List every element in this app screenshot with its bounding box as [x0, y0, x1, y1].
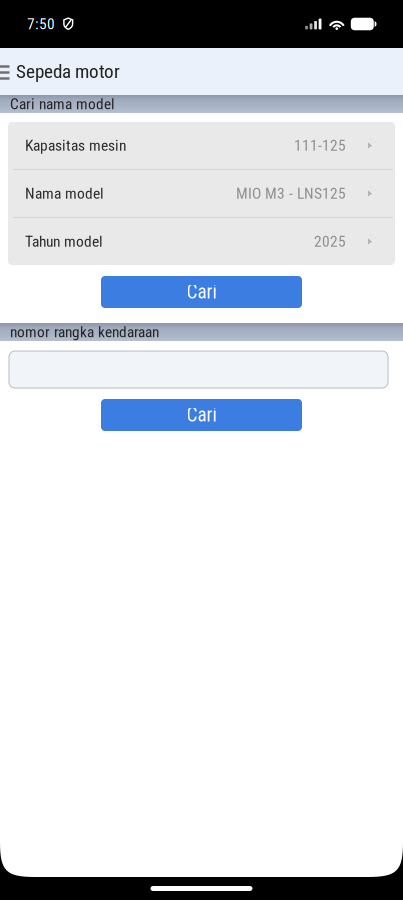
staticText: Cari [186, 281, 216, 303]
staticText: Cari nama model [10, 95, 115, 113]
button[interactable]: Tahun model [8, 218, 395, 265]
staticText: nomor rangka kendaraan [10, 323, 159, 341]
staticText: Kapasitas mesin [25, 136, 126, 154]
staticText: Cari [186, 404, 216, 426]
button[interactable]: Nama model [8, 170, 395, 217]
button[interactable]: Kapasitas mesin [8, 122, 395, 169]
button[interactable]: Menu [0, 48, 9, 95]
staticText: Sepeda motor [16, 60, 120, 83]
staticText: MIO M3 - LNS125 [236, 184, 346, 202]
staticText: 7:50 [27, 15, 55, 33]
staticText: 2025 [314, 232, 346, 250]
button[interactable]: Cari [101, 276, 302, 308]
button[interactable]: Cari [101, 399, 302, 431]
staticText: Tahun model [25, 232, 103, 250]
staticText: Nama model [25, 184, 104, 202]
staticText: 111-125 [294, 136, 346, 154]
